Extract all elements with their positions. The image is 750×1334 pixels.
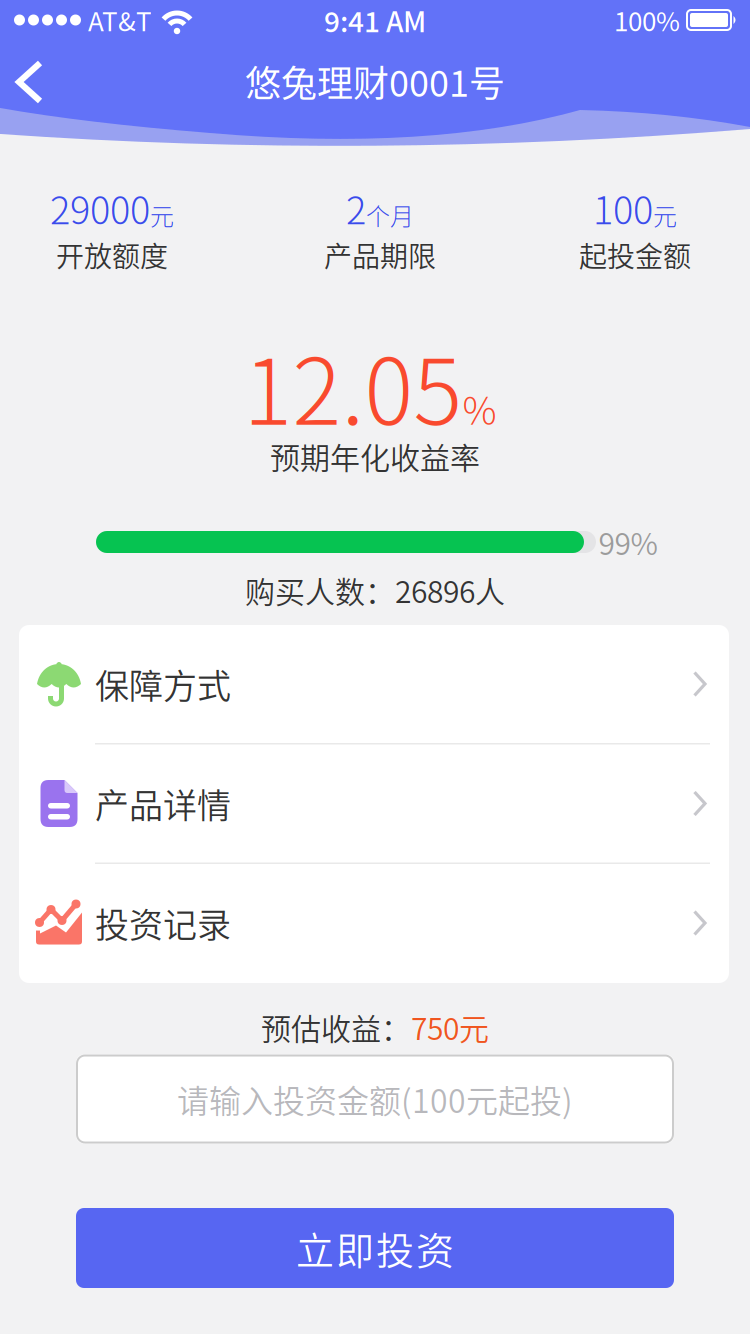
- button[interactable]: 产品详情: [19, 744, 729, 862]
- staticText: 投资记录: [95, 898, 231, 948]
- staticText: 9:41 AM: [324, 0, 426, 40]
- staticText: 2个月: [346, 181, 414, 234]
- staticText: 开放额度: [56, 235, 168, 275]
- staticText: 保障方式: [95, 659, 231, 709]
- staticText: 100%: [614, 1, 680, 39]
- staticText: 起投金额: [579, 235, 691, 275]
- staticText: 预估收益：: [261, 1005, 411, 1049]
- button[interactable]: 投资记录: [19, 864, 729, 982]
- button[interactable]: 保障方式: [19, 625, 729, 743]
- staticText: 12.05%: [243, 321, 496, 449]
- staticText: 750元: [411, 1005, 489, 1049]
- staticText: 预期年化收益率: [270, 434, 480, 478]
- button[interactable]: 立即投资: [76, 1208, 674, 1288]
- staticText: 购买人数：26896人: [245, 568, 505, 612]
- button[interactable]: 请输入投资金额(100元起投): [76, 1054, 674, 1143]
- staticText: 请输入投资金额(100元起投): [177, 1076, 573, 1122]
- staticText: 100元: [593, 181, 677, 234]
- staticText: 产品期限: [324, 235, 436, 275]
- staticText: 29000元: [50, 181, 174, 234]
- staticText: 产品详情: [95, 779, 231, 828]
- staticText: AT&T: [88, 1, 152, 39]
- staticText: 立即投资: [296, 1220, 454, 1275]
- staticText: 99%: [598, 520, 657, 564]
- staticText: 悠兔理财0001号: [245, 55, 505, 107]
- button[interactable]: [16, 61, 44, 103]
